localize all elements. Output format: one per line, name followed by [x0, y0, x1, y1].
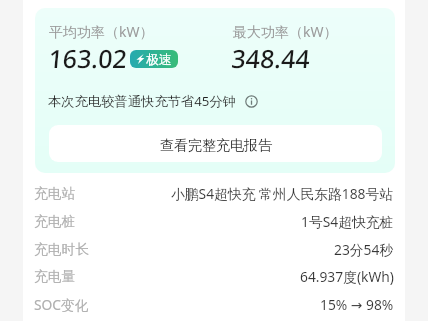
button[interactable]: 查看完整充电报告 [49, 125, 382, 162]
staticText: 充电桩 [34, 213, 76, 230]
staticText: 小鹏S4超快充 常州人民东路188号站 [171, 184, 394, 203]
staticText: 极速 [146, 51, 172, 67]
button[interactable]: 充电桩 [34, 208, 394, 234]
staticText: 平均功率（kW） [49, 22, 154, 41]
staticText: 最大功率（kW） [233, 22, 338, 41]
staticText: 23分54秒 [334, 240, 394, 259]
button[interactable]: SOC变化 [34, 291, 394, 317]
staticText: 充电量 [34, 268, 76, 285]
button[interactable]: Info [245, 95, 258, 108]
staticText: SOC变化 [34, 295, 89, 314]
staticText: 查看完整充电报告 [160, 137, 272, 155]
staticText: 64.937度(kWh) [300, 267, 394, 286]
staticText: 充电站 [34, 185, 76, 202]
staticText: 15% → 98% [320, 295, 394, 314]
button[interactable]: 充电站 [34, 180, 394, 206]
staticText: 充电时长 [34, 241, 90, 258]
staticText: 本次充电较普通快充节省45分钟 [48, 92, 237, 110]
button[interactable]: 充电时长 [34, 236, 394, 262]
button[interactable]: 充电量 [34, 263, 394, 289]
staticText: 1号S4超快充桩 [301, 212, 394, 231]
